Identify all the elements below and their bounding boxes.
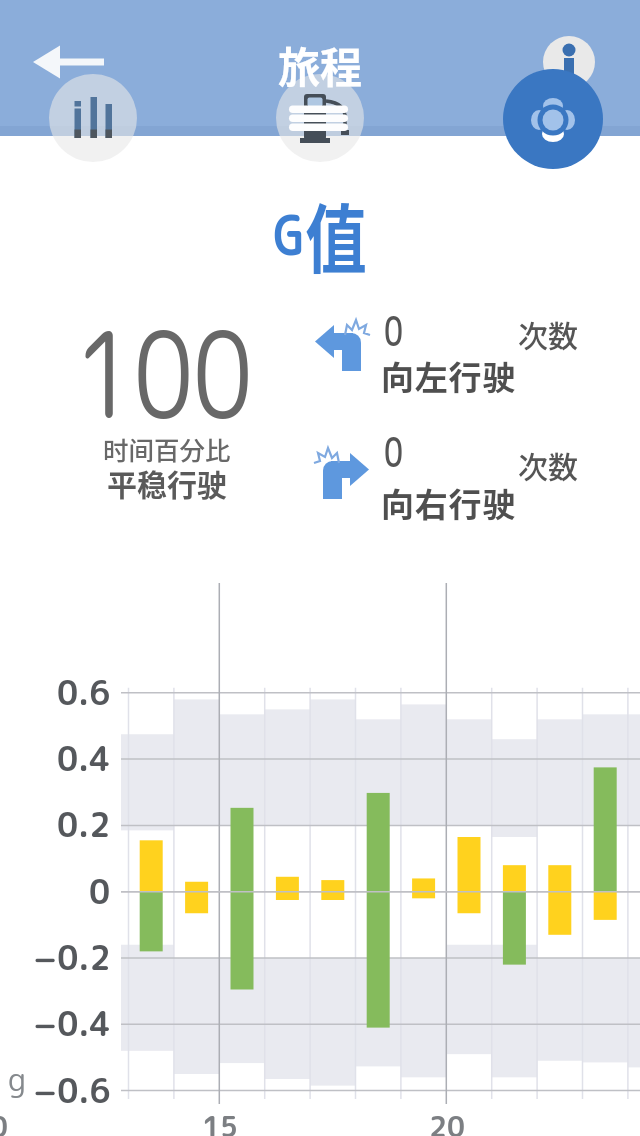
staticText: 值: [305, 180, 367, 289]
button[interactable]: [28, 42, 108, 82]
staticText: 0: [384, 422, 403, 481]
button[interactable]: [308, 446, 370, 508]
staticText: 0: [89, 869, 111, 915]
staticText: 100: [75, 290, 253, 456]
staticText: 0.2: [57, 802, 111, 848]
staticText: 旅程: [278, 34, 363, 95]
staticText: 0: [384, 301, 403, 360]
staticText: 向右行驶: [381, 479, 517, 527]
staticText: 0.4: [57, 736, 111, 782]
staticText: 0.6: [57, 670, 111, 716]
staticText: 次数: [518, 443, 578, 486]
staticText: 向左行驶: [381, 352, 517, 400]
button[interactable]: [503, 69, 603, 169]
button[interactable]: [276, 74, 364, 162]
staticText: 时间百分比: [103, 430, 231, 467]
staticText: 0: [0, 1107, 8, 1136]
button[interactable]: [543, 36, 595, 88]
button[interactable]: [49, 74, 137, 162]
staticText: −0.2: [33, 935, 111, 981]
staticText: 次数: [518, 312, 578, 355]
staticText: −0.6: [33, 1068, 111, 1114]
button[interactable]: [308, 318, 370, 380]
staticText: 平稳行驶: [107, 461, 227, 504]
staticText: 20: [429, 1107, 465, 1136]
staticText: g: [8, 1057, 27, 1102]
staticText: 15: [202, 1107, 238, 1136]
staticText: G: [273, 197, 305, 272]
staticText: −0.4: [33, 1001, 111, 1047]
